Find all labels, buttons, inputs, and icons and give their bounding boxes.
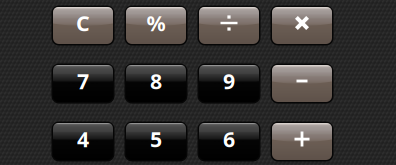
- button[interactable]: Percent: [126, 7, 186, 44]
- staticText: 9: [223, 67, 235, 95]
- button[interactable]: 4: [53, 123, 113, 160]
- button[interactable]: Divide: [199, 7, 259, 44]
- staticText: 8: [150, 67, 162, 95]
- staticText: %: [146, 9, 165, 37]
- button[interactable]: Multiply: [272, 7, 332, 44]
- staticText: 4: [77, 125, 89, 153]
- button[interactable]: Plus: [272, 123, 332, 160]
- button[interactable]: Minus: [272, 65, 332, 102]
- button[interactable]: 5: [126, 123, 186, 160]
- button[interactable]: 8: [126, 65, 186, 102]
- staticText: 5: [150, 125, 162, 153]
- button[interactable]: 6: [199, 123, 259, 160]
- staticText: C: [76, 9, 90, 37]
- button[interactable]: 7: [53, 65, 113, 102]
- button[interactable]: Clear: [53, 7, 113, 44]
- staticText: 7: [77, 67, 89, 95]
- staticText: 6: [223, 125, 235, 153]
- button[interactable]: 9: [199, 65, 259, 102]
